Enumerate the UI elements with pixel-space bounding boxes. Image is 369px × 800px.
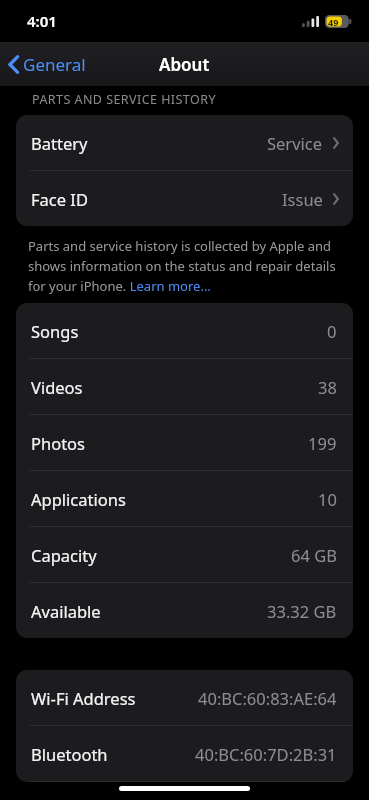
button[interactable]: Available	[16, 583, 353, 638]
staticText: General	[23, 53, 86, 76]
staticText: 0	[327, 320, 337, 342]
button[interactable]: General	[0, 46, 96, 83]
button[interactable]: Songs	[16, 303, 353, 359]
staticText: 64 GB	[291, 544, 337, 566]
staticText: 199	[308, 432, 337, 454]
staticText: 4:01	[27, 11, 57, 31]
staticText: Battery	[31, 132, 88, 154]
staticText: 33.32 GB	[267, 600, 337, 622]
button[interactable]: Applications	[16, 471, 353, 527]
staticText: About	[159, 53, 210, 76]
button[interactable]: Wi-Fi Address	[16, 670, 353, 726]
button[interactable]: Videos	[16, 359, 353, 415]
other: Open details	[332, 136, 340, 150]
staticText: Applications	[31, 488, 126, 510]
staticText: Songs	[31, 320, 79, 342]
staticText: Face ID	[31, 188, 88, 210]
button[interactable]: Face ID	[16, 171, 353, 226]
staticText: 49	[328, 16, 339, 28]
staticText: Capacity	[31, 544, 97, 566]
other: Open details	[332, 192, 340, 206]
staticText: Issue	[282, 188, 323, 210]
staticText: PARTS AND SERVICE HISTORY	[32, 91, 216, 108]
button[interactable]: Photos	[16, 415, 353, 471]
button[interactable]: Parts and service history is collected b…	[28, 237, 349, 295]
staticText: Available	[31, 600, 101, 622]
staticText: Bluetooth	[31, 743, 108, 765]
staticText: 40:BC:60:7D:2B:31	[195, 743, 337, 765]
staticText: Videos	[31, 376, 83, 398]
button[interactable]: Bluetooth	[16, 726, 353, 782]
staticText: Photos	[31, 432, 86, 454]
button[interactable]: Capacity	[16, 527, 353, 583]
button[interactable]: Battery	[16, 115, 353, 171]
staticText: 10	[318, 488, 337, 510]
staticText: Service	[267, 132, 323, 154]
staticText: Wi-Fi Address	[31, 687, 136, 709]
staticText: 40:BC:60:83:AE:64	[198, 687, 337, 709]
staticText: 38	[318, 376, 337, 398]
